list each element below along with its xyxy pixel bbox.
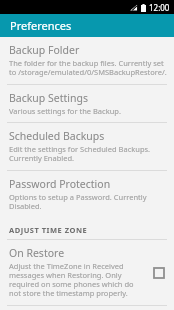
button[interactable]: Password Protection (0, 171, 174, 218)
button[interactable]: On Restore checkbox (149, 263, 169, 283)
button[interactable]: Backup Folder (0, 37, 174, 84)
staticText: Various settings for the Backup. (9, 106, 121, 116)
staticText: 12:00 (149, 2, 170, 13)
staticText: Options to setup a Password. Currently D… (9, 192, 169, 212)
button[interactable]: On Restore (0, 240, 174, 305)
staticText: ADJUST TIME ZONE (9, 225, 88, 235)
staticText: Preferences (10, 18, 72, 33)
staticText: Adjust the TimeZone in Received messages… (9, 261, 144, 299)
staticText: Backup Settings (9, 91, 88, 105)
button[interactable]: Backup Settings (0, 85, 174, 122)
staticText: Backup Folder (9, 43, 80, 57)
staticText: Edit the settings for Scheduled Backups.… (9, 144, 169, 164)
staticText: Scheduled Backups (9, 129, 105, 143)
button[interactable]: Scheduled Backups (0, 123, 174, 170)
staticText: Password Protection (9, 177, 111, 191)
staticText: On Restore (9, 246, 65, 260)
staticText: The folder for the backup files. Current… (9, 58, 169, 78)
